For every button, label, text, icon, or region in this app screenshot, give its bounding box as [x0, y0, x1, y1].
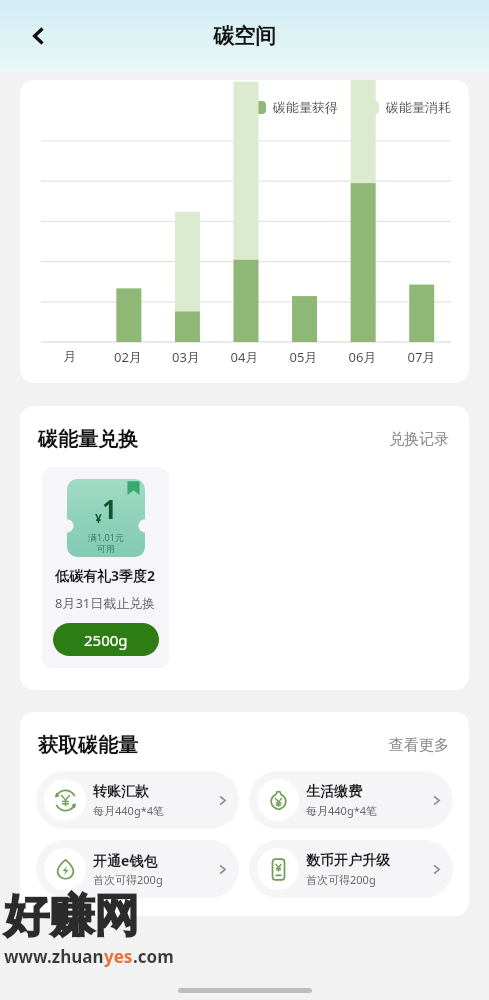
staticText: 可用 — [97, 543, 115, 554]
button[interactable]: 开通e钱包 — [36, 840, 239, 898]
staticText: 低碳有礼3季度2 — [55, 566, 156, 585]
staticText: 06月 — [333, 348, 392, 366]
staticText: 首次可得200g — [93, 872, 163, 887]
staticText: 首次可得200g — [306, 872, 376, 887]
button[interactable]: 转账汇款 — [36, 771, 239, 829]
staticText: 04月 — [215, 348, 274, 366]
staticText: .com — [133, 945, 174, 968]
button[interactable]: 兑换记录 — [385, 426, 453, 453]
staticText: 碳能量获得 — [273, 99, 338, 115]
staticText: 好赚网 — [4, 888, 139, 945]
staticText: 每月440g*4笔 — [306, 803, 377, 818]
staticText: 满1.01元 — [88, 531, 124, 543]
button[interactable]: 查看更多 — [385, 732, 453, 759]
staticText: 转账汇款 — [93, 783, 149, 801]
staticText: 碳空间 — [213, 23, 276, 49]
staticText: 每月440g*4笔 — [93, 803, 164, 818]
button[interactable]: 2500g — [53, 623, 159, 656]
staticText: 月 — [41, 348, 99, 364]
staticText: 02月 — [99, 348, 157, 366]
staticText: ¥ — [95, 510, 102, 526]
staticText: 03月 — [157, 348, 215, 366]
staticText: 查看更多 — [389, 736, 449, 755]
staticText: 8月31日截止兑换 — [55, 594, 156, 612]
staticText: 07月 — [392, 348, 451, 366]
staticText: 碳能量兑换 — [38, 427, 138, 452]
staticText: yes — [104, 945, 133, 968]
button[interactable]: 数币开户升级 — [249, 840, 453, 898]
button[interactable]: 生活缴费 — [249, 771, 453, 829]
staticText: 兑换记录 — [389, 430, 449, 449]
button[interactable]: ¥ — [42, 467, 169, 668]
staticText: 生活缴费 — [306, 783, 362, 801]
button[interactable]: Back — [18, 15, 60, 57]
staticText: 碳能量消耗 — [386, 99, 451, 115]
staticText: 1 — [102, 491, 117, 526]
staticText: 数币开户升级 — [306, 852, 390, 870]
staticText: www.zhuan — [4, 945, 104, 968]
staticText: 2500g — [84, 630, 128, 650]
staticText: 开通e钱包 — [93, 851, 158, 870]
staticText: 05月 — [274, 348, 333, 366]
staticText: 获取碳能量 — [38, 733, 138, 758]
